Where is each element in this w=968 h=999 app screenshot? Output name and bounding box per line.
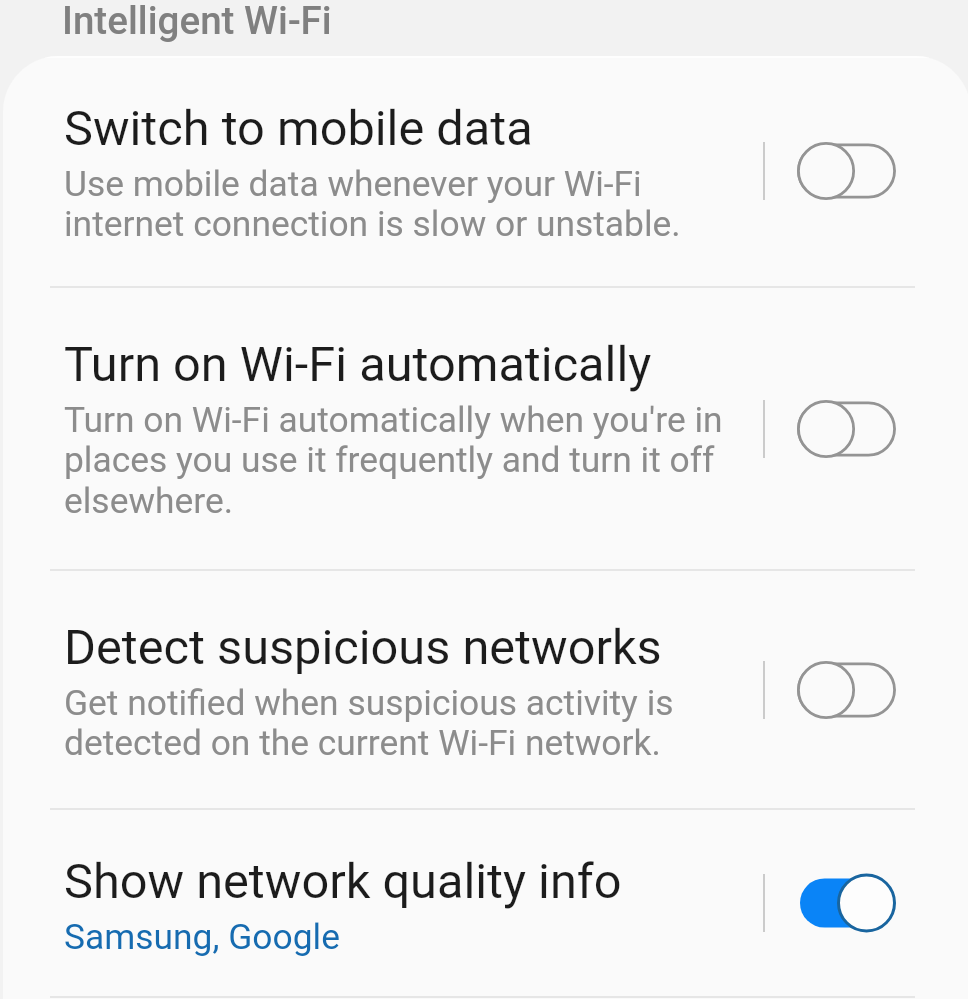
button[interactable]: Turn on Wi-Fi automatically: [3, 288, 968, 569]
button[interactable]: Show network quality info, on: [750, 855, 900, 951]
button[interactable]: Switch to mobile data: [3, 56, 968, 286]
staticText: Samsung, Google: [64, 916, 340, 957]
button[interactable]: Detect suspicious networks: [3, 571, 968, 808]
staticText: Turn on Wi-Fi automatically when you're …: [64, 399, 731, 522]
staticText: Switch to mobile data: [64, 100, 533, 157]
button[interactable]: Show network quality info: [3, 810, 968, 996]
staticText: Intelligent Wi-Fi: [62, 0, 332, 43]
staticText: Turn on Wi-Fi automatically: [64, 336, 652, 393]
staticText: Show network quality info: [64, 853, 622, 910]
button[interactable]: Detect suspicious networks, off: [750, 642, 900, 738]
staticText: Use mobile data whenever your Wi-Fi inte…: [64, 163, 731, 245]
staticText: Detect suspicious networks: [64, 619, 662, 676]
button[interactable]: Switch to mobile data, off: [750, 123, 900, 219]
button[interactable]: Turn on Wi-Fi automatically, off: [750, 381, 900, 477]
staticText: Get notified when suspicious activity is…: [64, 682, 731, 764]
